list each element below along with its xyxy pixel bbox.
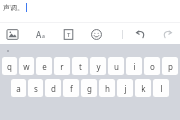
button[interactable]: a [11,79,26,97]
staticText: d [51,83,56,94]
button[interactable]: i [126,57,142,75]
staticText: f [70,83,73,94]
staticText: p [168,61,173,72]
staticText: g [87,83,92,94]
button[interactable]: y [90,57,106,75]
staticText: q [7,61,12,72]
staticText: t [79,61,82,72]
button[interactable]: Insert image [4,26,20,42]
staticText: h [105,83,110,94]
button[interactable]: q [2,57,17,75]
button[interactable]: s [28,79,43,97]
button[interactable]: w [19,57,34,75]
staticText: 声调。 [3,3,24,12]
staticText: s [34,83,38,94]
button[interactable]: Text box [60,26,76,42]
button[interactable]: k [135,79,151,97]
button[interactable]: j [117,79,133,97]
button[interactable]: e [36,57,52,75]
button[interactable]: Text format [32,26,48,42]
staticText: r [60,61,64,72]
button[interactable]: 声调。 [0,0,180,22]
button[interactable]: h [99,79,115,97]
button[interactable]: Redo [159,26,175,42]
staticText: a [16,83,21,94]
staticText: o [150,61,155,72]
staticText: k [141,83,146,94]
staticText: e [42,61,47,72]
button[interactable]: d [45,79,61,97]
button[interactable]: u [108,57,124,75]
staticText: i [133,61,136,72]
button[interactable]: t [72,57,88,75]
staticText: l [160,83,163,94]
button[interactable]: o [144,57,160,75]
staticText: A [36,29,42,40]
staticText: T [67,31,71,39]
staticText: y [96,61,101,72]
button[interactable]: Undo [132,26,148,42]
button[interactable]: l [153,79,169,97]
button[interactable]: Emoji [88,26,104,42]
staticText: j [124,83,127,94]
button[interactable]: f [63,79,79,97]
staticText: u [114,61,119,72]
button[interactable]: p [162,57,178,75]
button[interactable]: g [81,79,97,97]
button[interactable]: r [54,57,70,75]
staticText: w [23,61,30,72]
staticText: a [42,33,45,40]
